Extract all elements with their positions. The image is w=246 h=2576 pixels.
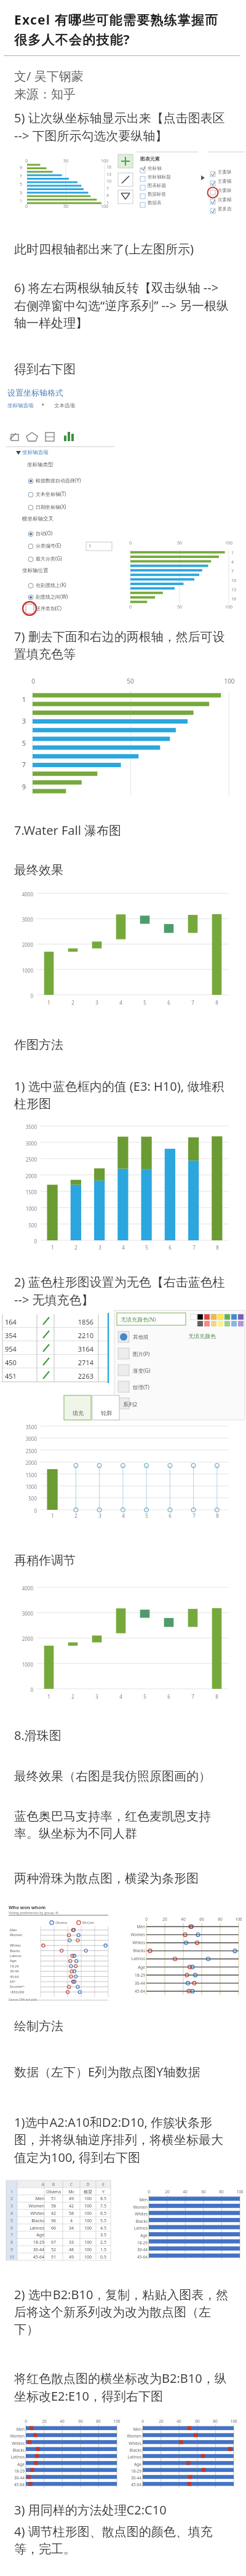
staticText: 80 — [215, 1916, 226, 1922]
staticText: Latinos — [121, 1956, 145, 1961]
staticText: 80 — [93, 2418, 104, 2424]
staticText: Women — [121, 1932, 145, 1937]
staticText: Mc — [63, 2189, 80, 2195]
staticText: 9 — [14, 165, 22, 171]
staticText: 1856 — [59, 1317, 93, 1326]
staticText: Whites — [121, 1940, 145, 1945]
staticText: Who won whom — [9, 1904, 64, 1910]
staticText: 3164 — [59, 1344, 93, 1354]
staticText: 0 — [143, 2189, 154, 2195]
staticText: 20 — [159, 1916, 170, 1922]
staticText: 2714 — [59, 1358, 93, 1367]
staticText: 7 — [188, 999, 198, 1006]
staticText: Women — [10, 1932, 39, 1937]
staticText: 坐标轴类型 — [27, 461, 64, 468]
staticText: 0 — [20, 158, 33, 164]
staticText: Obama — [44, 2189, 63, 2195]
staticText: 30-44 — [118, 2475, 141, 2481]
staticText: 4 — [63, 2218, 80, 2224]
staticText: 1 — [14, 198, 22, 204]
staticText: 60 — [198, 2189, 209, 2195]
staticText: 渐变(G) — [133, 1367, 176, 1374]
staticText: 1 — [231, 550, 241, 556]
staticText: 1.5 — [96, 2247, 111, 2253]
staticText: Whites — [17, 2211, 44, 2217]
staticText: 0 — [141, 1916, 152, 1922]
staticText: 4.5 — [96, 2225, 111, 2231]
staticText: 8 — [212, 1693, 222, 1700]
staticText: 500 — [15, 1222, 37, 1229]
staticText: 20 — [162, 2189, 173, 2195]
staticText: Blacks — [1, 2447, 25, 2453]
staticText: 2) 选中B2:B10，复制，粘贴入图表，然后将这个新系列改为改为散点图（左下） — [14, 2286, 232, 2337]
staticText: Whites — [10, 1943, 39, 1947]
staticText: 2000 — [11, 1635, 33, 1642]
staticText: 45-64 — [17, 2254, 44, 2260]
staticText: 0 — [11, 1686, 33, 1693]
staticText: 5 — [14, 181, 22, 188]
staticText: 2500 — [15, 1156, 37, 1163]
staticText: 6 — [164, 999, 174, 1006]
staticText: 8 — [6, 2239, 17, 2246]
staticText: Blacks — [17, 2218, 44, 2224]
staticText: 在刻度线上(K) — [36, 581, 91, 588]
staticText: 2 — [68, 999, 78, 1006]
staticText: 51 — [44, 2196, 63, 2202]
staticText: 0 — [125, 540, 136, 546]
staticText: ▾ — [42, 402, 50, 407]
staticText: 坐标轴 — [148, 165, 191, 171]
staticText: 最终效果 — [14, 863, 232, 878]
staticText: 横坐标轴交叉 — [22, 516, 71, 522]
staticText: 18-29 — [10, 1964, 39, 1968]
staticText: 主要纵 — [218, 169, 246, 175]
staticText: Source: CNN exit polls — [9, 1998, 52, 2001]
staticText: 绘制方法 — [14, 2019, 232, 2034]
staticText: 次要横 — [218, 197, 246, 202]
staticText: 100 — [223, 540, 235, 546]
staticText: 此时四根轴都出来了(上左图所示) — [14, 241, 232, 257]
staticText: 1 — [16, 695, 26, 704]
staticText: 42 — [44, 2211, 63, 2217]
staticText: 两种滑珠为散点图，横梁为条形图 — [14, 1871, 232, 1886]
staticText: 6 — [165, 1244, 175, 1251]
staticText: 49 — [63, 2254, 80, 2260]
staticText: 16 — [106, 164, 115, 170]
staticText: 0 — [137, 2418, 148, 2424]
staticText: 文本选项 — [54, 402, 85, 409]
staticText: Income*: — [10, 1984, 39, 1988]
staticText: 3000 — [11, 1610, 33, 1617]
staticText: 100 — [228, 2418, 239, 2424]
staticText: 0 — [15, 1507, 37, 1514]
staticText: 0 — [11, 992, 33, 999]
staticText: 5.5 — [96, 2218, 111, 2224]
staticText: 7.Water Fall 瀑布图 — [14, 822, 232, 839]
staticText: 3) 用同样的方法处理C2:C10 — [14, 2502, 232, 2518]
staticText: 50 — [125, 677, 136, 685]
staticText: 8 — [212, 1512, 223, 1519]
staticText: 354 — [5, 1331, 33, 1340]
staticText: 34 — [63, 2225, 80, 2231]
staticText: Excel 有哪些可能需要熟练掌握而很多人不会的技能? — [14, 11, 232, 49]
staticText: 58 — [63, 2211, 80, 2217]
staticText: 7 — [16, 760, 26, 769]
staticText: 18-29 — [17, 2239, 44, 2246]
staticText: 更多选 — [218, 206, 246, 212]
staticText: 5 — [141, 1244, 152, 1251]
staticText: Age — [17, 2232, 44, 2238]
staticText: 8 — [212, 999, 222, 1006]
staticText: 7 — [189, 1244, 199, 1251]
staticText: 0 — [28, 677, 39, 685]
staticText: 100 — [98, 204, 111, 210]
staticText: 4 — [116, 999, 126, 1006]
staticText: D — [80, 2182, 96, 2188]
staticText: Blacks — [118, 2447, 141, 2453]
staticText: 1)选中A2:A10和D2:D10, 作簇状条形图，并将纵轴逆序排列，将横坐标最… — [14, 2114, 232, 2166]
staticText: 7 — [189, 1512, 199, 1519]
staticText: 3 — [14, 190, 22, 196]
staticText: 2) 蓝色柱形图设置为无色【右击蓝色柱 --> 无填充色】 — [14, 1274, 232, 1308]
staticText: 18-29 — [121, 1972, 145, 1978]
staticText: 3 — [92, 1693, 102, 1700]
staticText: 50 — [60, 204, 72, 210]
staticText: 100 — [80, 2211, 96, 2217]
staticText: 100 — [80, 2247, 96, 2253]
